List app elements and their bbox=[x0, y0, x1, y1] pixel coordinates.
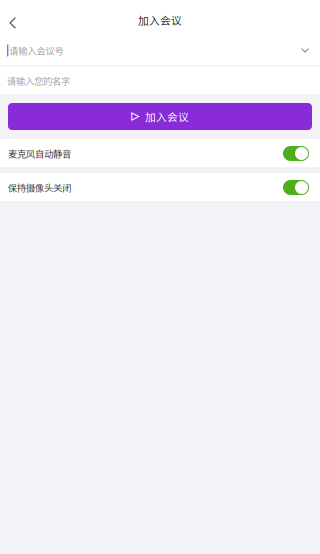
staticText: 请输入会议号 bbox=[9, 44, 63, 57]
staticText: 加入会议 bbox=[138, 12, 182, 28]
staticText: 麦克风自动静音 bbox=[8, 147, 71, 160]
button[interactable]: 加入会议 bbox=[8, 103, 312, 130]
staticText: 请输入您的名字 bbox=[7, 74, 70, 87]
button[interactable]: Back bbox=[0, 0, 26, 34]
staticText: 保持摄像头关闭 bbox=[8, 181, 71, 194]
button[interactable]: 保持摄像头关闭 bbox=[0, 173, 320, 201]
staticText: 加入会议 bbox=[145, 109, 189, 124]
button[interactable]: 麦克风自动静音 bbox=[0, 139, 320, 167]
